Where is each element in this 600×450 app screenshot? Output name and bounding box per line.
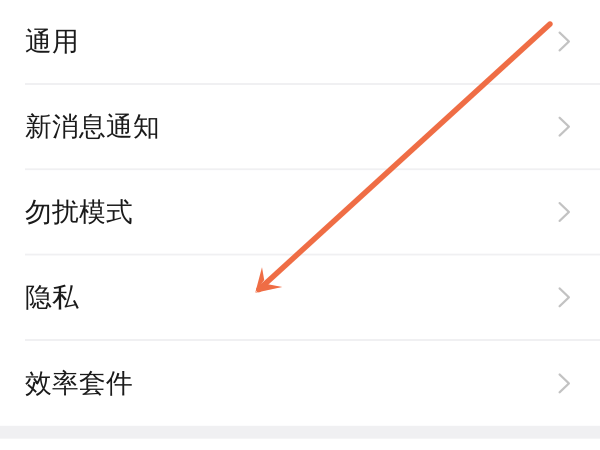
button[interactable]: 勿扰模式 bbox=[0, 170, 600, 254]
staticText: 隐私 bbox=[25, 281, 79, 314]
button[interactable]: 新消息通知 bbox=[0, 85, 600, 168]
button[interactable]: 隐私 bbox=[0, 256, 600, 339]
staticText: 勿扰模式 bbox=[25, 196, 133, 228]
staticText: 新消息通知 bbox=[25, 110, 160, 143]
staticText: 效率套件 bbox=[25, 367, 133, 400]
button[interactable]: 效率套件 bbox=[0, 341, 600, 426]
button[interactable]: 通用 bbox=[0, 0, 600, 83]
staticText: 通用 bbox=[25, 25, 79, 58]
